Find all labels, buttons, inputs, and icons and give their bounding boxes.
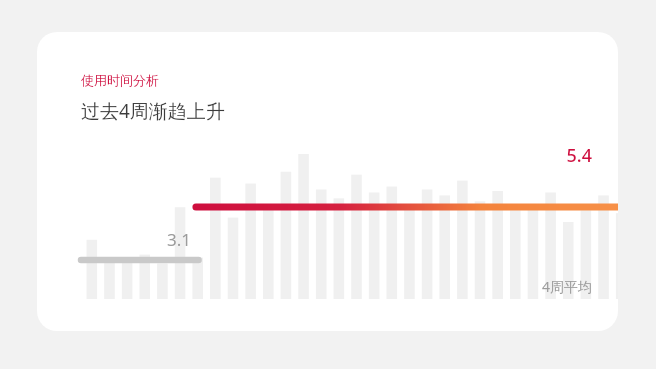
- staticText: 使用时间分析: [81, 72, 159, 88]
- staticText: 4周平均: [500, 277, 592, 299]
- other: Usage trend chart: [77, 137, 597, 317]
- staticText: 过去4周渐趋上升: [81, 98, 225, 124]
- staticText: 5.4: [548, 143, 592, 169]
- staticText: 3.1: [167, 228, 192, 251]
- button[interactable]: 使用时间分析: [37, 32, 618, 331]
